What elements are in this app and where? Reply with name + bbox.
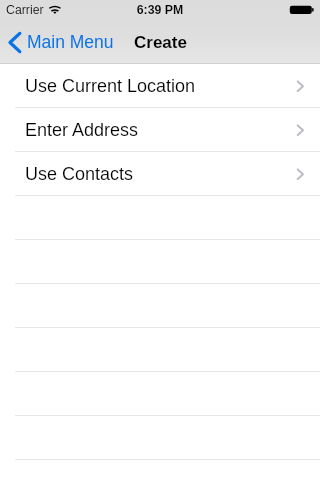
button[interactable]: [0, 372, 320, 416]
button[interactable]: [0, 284, 320, 328]
staticText: Use Current Location: [25, 76, 196, 96]
button[interactable]: [0, 240, 320, 284]
button[interactable]: Enter Address: [0, 108, 320, 152]
button[interactable]: Main Menu: [0, 20, 114, 64]
button[interactable]: [0, 328, 320, 372]
staticText: Main Menu: [27, 32, 114, 52]
staticText: Carrier: [6, 3, 44, 17]
button[interactable]: [0, 416, 320, 460]
staticText: Use Contacts: [25, 164, 134, 184]
button[interactable]: Use Current Location: [0, 64, 320, 108]
button[interactable]: [0, 196, 320, 240]
staticText: Create: [134, 33, 187, 52]
staticText: 6:39 PM: [0, 3, 320, 17]
staticText: Enter Address: [25, 120, 139, 140]
button[interactable]: Use Contacts: [0, 152, 320, 196]
